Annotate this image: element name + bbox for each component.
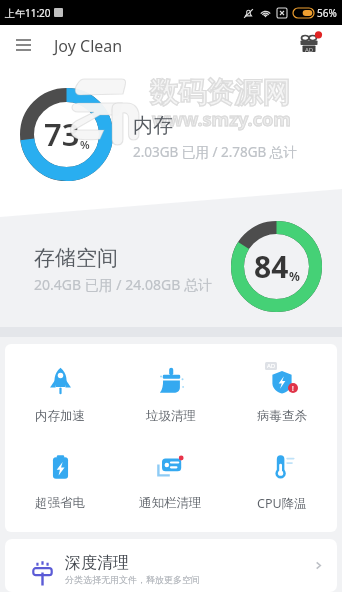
button[interactable]: 超强省电 [5,452,115,511]
staticText: www.smzy.com [152,107,291,132]
staticText: 内存 [133,113,173,138]
staticText: 内存加速 [35,408,85,424]
staticText: ! [292,384,294,393]
staticText: 2.03GB 已用 / 2.78GB 总计 [133,143,297,161]
staticText: 数码资源网 [150,75,290,110]
button[interactable]: Gift offers [298,32,322,56]
button[interactable]: 通知栏清理 [115,452,226,511]
staticText: 超强省电 [35,495,85,511]
staticText: 深度清理 [65,553,129,573]
button[interactable]: Menu [8,30,38,60]
staticText: Joy Clean [54,35,123,57]
staticText: www.smzy.com [152,107,291,132]
staticText: 73 [44,113,80,155]
staticText: 存储空间 [34,245,118,271]
staticText: CPU降温 [257,495,307,512]
staticText: 84 [254,246,289,287]
button[interactable]: 深度清理 [5,539,337,592]
staticText: 病毒查杀 [257,408,307,424]
staticText: 通知栏清理 [139,495,202,511]
staticText: AD [267,362,276,370]
button[interactable]: AD [226,365,337,424]
staticText: % [289,268,300,284]
button[interactable]: 垃圾清理 [115,365,226,424]
staticText: 分类选择无用文件，释放更多空间 [65,574,200,585]
staticText: 20.4GB 已用 / 24.08GB 总计 [34,275,212,294]
staticText: 垃圾清理 [146,408,196,424]
staticText: AD [305,46,314,54]
staticText: 上午11:20 [5,6,51,20]
staticText: % [80,137,90,152]
staticText: 56% [317,6,337,20]
button[interactable]: CPU降温 [226,452,337,512]
staticText: 数码资源网 [150,75,290,110]
button[interactable]: 内存加速 [5,365,115,424]
